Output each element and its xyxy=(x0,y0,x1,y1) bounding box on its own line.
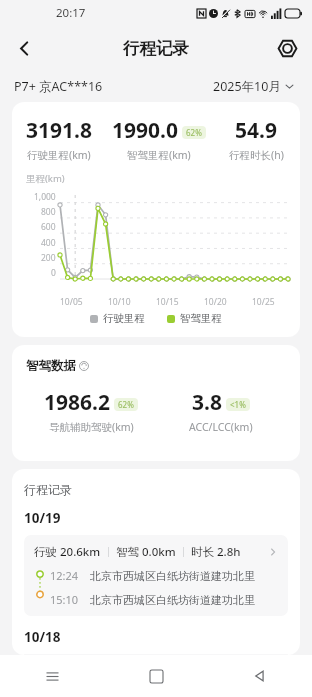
staticText: 62% xyxy=(118,399,134,410)
staticText: 54.9 xyxy=(235,116,277,145)
button[interactable]: Info xyxy=(79,361,89,371)
staticText: 3191.8 xyxy=(26,116,92,145)
staticText: 200 xyxy=(41,252,56,264)
staticText: 智驾里程(km) xyxy=(127,148,191,162)
staticText: 10/18 xyxy=(24,628,61,646)
staticText: 10/15 xyxy=(156,296,179,308)
staticText: 导航辅助驾驶(km) xyxy=(49,420,134,434)
staticText: 行程记录 xyxy=(24,482,72,497)
staticText: 智驾 0.0km xyxy=(116,544,176,560)
staticText: 行驶里程(km) xyxy=(27,148,91,162)
staticText: 行程时长(h) xyxy=(229,148,284,162)
staticText: 智驾里程 xyxy=(180,312,222,325)
staticText: 2025年10月 xyxy=(213,78,281,95)
staticText: ACC/LCC(km) xyxy=(189,420,253,434)
staticText: 15:10 xyxy=(50,592,79,607)
button[interactable]: 行驶 20.6km xyxy=(24,535,288,616)
button[interactable]: Home xyxy=(104,670,208,683)
staticText: 行驶里程 xyxy=(103,312,145,325)
staticText: 12:24 xyxy=(50,568,79,583)
staticText: 10/05 xyxy=(60,296,83,308)
staticText: 行程记录 xyxy=(123,38,189,59)
staticText: <1% xyxy=(230,399,246,410)
staticText: 600 xyxy=(41,221,56,233)
button[interactable]: Recents xyxy=(0,669,104,684)
staticText: 智驾数据 xyxy=(26,358,76,374)
staticText: 800 xyxy=(41,206,56,218)
staticText: 20:17 xyxy=(56,5,86,21)
staticText: 10/10 xyxy=(108,296,131,308)
staticText: 1986.2 xyxy=(44,388,110,417)
staticText: 10/25 xyxy=(252,296,275,308)
staticText: 1990.0 xyxy=(112,116,178,145)
staticText: P7+ 京AC***16 xyxy=(14,78,103,95)
staticText: 1,000 xyxy=(34,191,56,203)
button[interactable]: 2025年10月 xyxy=(209,74,298,99)
staticText: 北京市西城区白纸坊街道建功北里 xyxy=(90,593,255,607)
staticText: 北京市西城区白纸坊街道建功北里 xyxy=(90,569,255,583)
staticText: 10/20 xyxy=(204,296,227,308)
staticText: 行驶 20.6km xyxy=(34,544,101,560)
staticText: 时长 2.8h xyxy=(191,544,241,560)
staticText: 0 xyxy=(51,267,56,279)
button[interactable]: 智驾里程 xyxy=(165,310,224,327)
button[interactable]: Settings xyxy=(270,31,304,65)
button[interactable]: Back xyxy=(208,669,312,683)
staticText: 3.8 xyxy=(192,388,222,417)
staticText: 10/19 xyxy=(24,509,61,527)
staticText: 里程(km) xyxy=(26,172,65,185)
button[interactable]: 行驶里程 xyxy=(88,310,147,327)
staticText: 62% xyxy=(186,127,202,138)
staticText: 400 xyxy=(41,237,56,249)
button[interactable]: Back xyxy=(6,30,42,66)
